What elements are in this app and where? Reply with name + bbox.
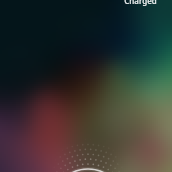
staticText: Charged xyxy=(124,0,157,6)
